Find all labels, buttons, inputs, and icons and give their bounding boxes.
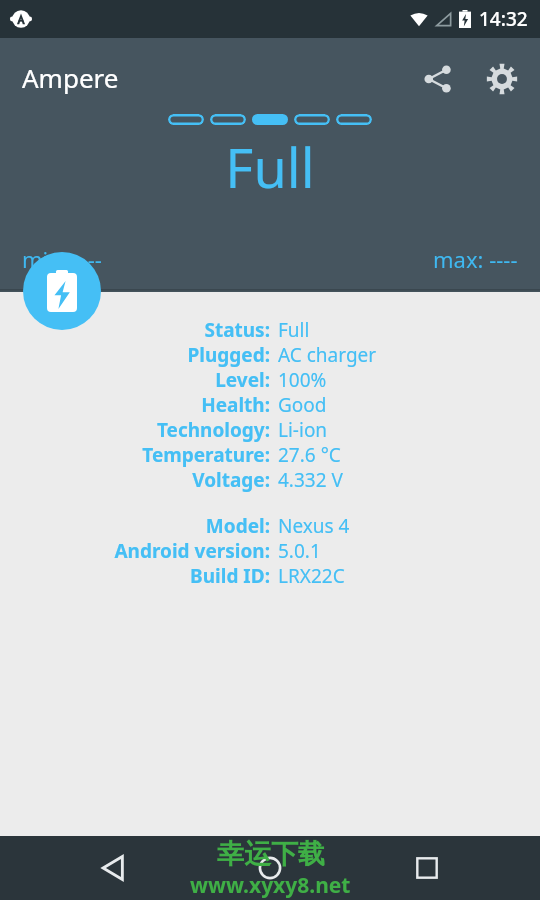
button[interactable]: Level:	[0, 367, 540, 392]
staticText: Technology:	[156, 417, 270, 442]
staticText: 14:32	[479, 6, 528, 32]
button[interactable]: Voltage:	[0, 467, 540, 492]
button[interactable]: Technology:	[0, 417, 540, 442]
staticText: Full	[278, 317, 310, 342]
staticText: Good	[278, 392, 327, 417]
button[interactable]: Temperature:	[0, 442, 540, 467]
staticText: Level:	[215, 367, 270, 392]
staticText: Li-ion	[278, 417, 328, 442]
button[interactable]: Page 1	[168, 114, 204, 125]
staticText: 100%	[278, 367, 327, 392]
button[interactable]: Page 4	[294, 114, 330, 125]
button[interactable]: Share	[414, 55, 462, 103]
button[interactable]: Android version:	[0, 538, 540, 563]
staticText: AC charger	[278, 342, 377, 367]
staticText: Android version:	[114, 538, 270, 563]
button[interactable]: Measure charging current	[23, 252, 101, 330]
staticText: www.xyxy8.net	[190, 871, 351, 900]
button[interactable]: Model:	[0, 513, 540, 538]
button[interactable]: Back	[85, 840, 141, 896]
staticText: min: ----	[22, 244, 102, 274]
staticText: 幸运下载	[217, 837, 325, 871]
staticText: 27.6 °C	[278, 442, 341, 467]
staticText: max: ----	[433, 244, 518, 274]
staticText: Health:	[201, 392, 270, 417]
button[interactable]: Page 2	[210, 114, 246, 125]
button[interactable]: Home	[242, 840, 298, 896]
staticText: Voltage:	[192, 467, 270, 492]
button[interactable]: Build ID:	[0, 563, 540, 588]
button[interactable]: Health:	[0, 392, 540, 417]
staticText: Nexus 4	[278, 513, 350, 538]
staticText: Model:	[205, 513, 270, 538]
button[interactable]: Page 5	[336, 114, 372, 125]
staticText: Ampere	[22, 60, 119, 95]
staticText: Full	[0, 130, 540, 204]
button[interactable]: Recent apps	[399, 840, 455, 896]
button[interactable]: Plugged:	[0, 342, 540, 367]
staticText: LRX22C	[278, 563, 345, 588]
button[interactable]: Status:	[0, 317, 540, 342]
staticText: Status:	[204, 317, 270, 342]
staticText: 4.332 V	[278, 467, 343, 492]
staticText: 5.0.1	[278, 538, 321, 563]
staticText: Build ID:	[190, 563, 270, 588]
staticText: Plugged:	[187, 342, 270, 367]
staticText: Temperature:	[142, 442, 270, 467]
button[interactable]: Page 3	[252, 114, 288, 125]
button[interactable]: Settings	[478, 55, 526, 103]
